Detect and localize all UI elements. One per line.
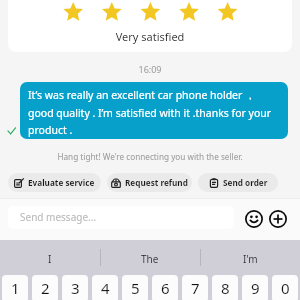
- button[interactable]: 6: [152, 275, 178, 300]
- staticText: Evaluate service: [28, 177, 95, 188]
- staticText: The: [141, 252, 159, 266]
- staticText: 3: [71, 278, 80, 298]
- button[interactable]: I'm: [200, 240, 300, 275]
- button[interactable]: 5: [122, 275, 148, 300]
- button[interactable]: Evaluate service: [8, 173, 101, 192]
- button[interactable]: The: [100, 240, 200, 275]
- button[interactable]: 7: [182, 275, 208, 300]
- button[interactable]: 2: [32, 275, 58, 300]
- button[interactable]: It’s was really an excellent car phone h…: [20, 82, 288, 139]
- button[interactable]: Send order: [198, 173, 278, 192]
- staticText: 16:09: [0, 63, 300, 75]
- staticText: 5: [131, 278, 140, 298]
- button[interactable]: Emoji: [242, 207, 266, 231]
- staticText: Very satisfied: [0, 29, 300, 44]
- button[interactable]: 3: [62, 275, 88, 300]
- staticText: It’s was really an excellent car phone h…: [28, 88, 272, 137]
- button[interactable]: 8: [212, 275, 238, 300]
- staticText: 1: [11, 278, 20, 298]
- button[interactable]: 4: [92, 275, 118, 300]
- staticText: Send message...: [20, 210, 97, 224]
- button[interactable]: 1: [2, 275, 28, 300]
- staticText: 6: [161, 278, 170, 298]
- staticText: 9: [251, 278, 260, 298]
- staticText: Hang tight! We're connecting you with th…: [0, 151, 300, 162]
- staticText: 8: [221, 278, 230, 298]
- staticText: Request refund: [125, 177, 188, 188]
- button[interactable]: 9: [242, 275, 268, 300]
- staticText: 7: [191, 278, 200, 298]
- staticText: Send order: [223, 177, 268, 188]
- staticText: 0: [281, 278, 290, 298]
- button[interactable]: Request refund: [107, 173, 192, 192]
- button[interactable]: Send message...: [8, 206, 234, 229]
- button[interactable]: I: [0, 240, 100, 275]
- staticText: 2: [41, 278, 50, 298]
- staticText: I: [48, 252, 52, 266]
- button[interactable]: 0: [272, 275, 298, 300]
- staticText: 4: [101, 278, 110, 298]
- button[interactable]: Add attachment: [266, 207, 290, 231]
- staticText: I'm: [243, 252, 258, 266]
